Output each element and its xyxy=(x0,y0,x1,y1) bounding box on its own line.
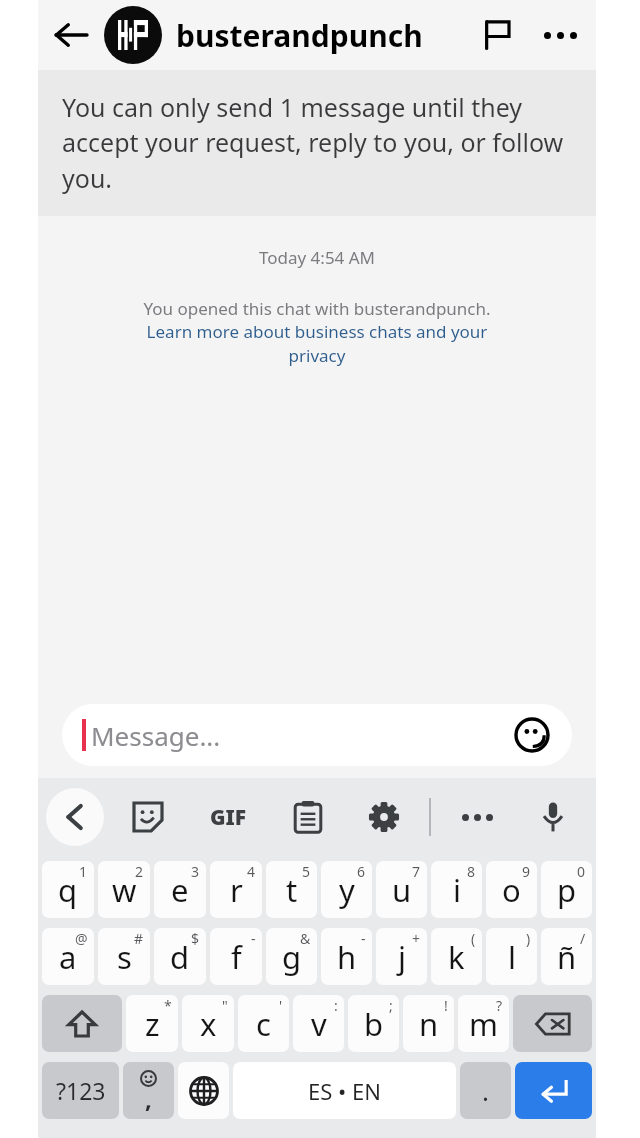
staticText: * xyxy=(164,996,172,1015)
staticText: c xyxy=(256,1003,271,1045)
button[interactable]: ñ xyxy=(541,928,592,985)
staticText: 7 xyxy=(412,862,421,881)
staticText: n xyxy=(419,1003,439,1045)
button[interactable]: o xyxy=(486,861,537,918)
button[interactable]: Message... xyxy=(62,704,572,766)
button[interactable]: Back xyxy=(38,2,104,68)
button[interactable]: n xyxy=(403,995,454,1052)
button[interactable]: Learn more about business chats and your… xyxy=(38,320,596,367)
staticText: ( xyxy=(471,929,476,948)
button[interactable]: p xyxy=(541,861,592,918)
staticText: ñ xyxy=(557,936,577,978)
staticText: 2 xyxy=(135,862,144,881)
button[interactable]: r xyxy=(210,861,262,918)
staticText: e xyxy=(171,869,189,911)
staticText: ?123 xyxy=(56,1075,106,1106)
button[interactable]: Voice input xyxy=(525,789,581,845)
staticText: / xyxy=(580,929,586,948)
staticText: , xyxy=(145,1082,152,1115)
button[interactable]: d xyxy=(154,928,206,985)
staticText: x xyxy=(200,1003,217,1045)
staticText: q xyxy=(58,869,78,911)
button[interactable]: busterandpunch xyxy=(176,15,466,56)
staticText: b xyxy=(364,1003,384,1045)
staticText: i xyxy=(453,869,461,911)
button[interactable]: ES • EN xyxy=(233,1062,456,1119)
staticText: $ xyxy=(191,929,200,948)
button[interactable]: Stickers xyxy=(512,715,552,755)
button[interactable]: m xyxy=(458,995,509,1052)
button[interactable]: w xyxy=(98,861,150,918)
staticText: o xyxy=(502,869,521,911)
button[interactable]: c xyxy=(238,995,289,1052)
button[interactable]: Shift xyxy=(42,995,122,1052)
staticText: 9 xyxy=(522,862,531,881)
button[interactable]: l xyxy=(486,928,537,985)
button[interactable]: t xyxy=(266,861,317,918)
button[interactable]: x xyxy=(182,995,234,1052)
staticText: & xyxy=(300,929,311,948)
button[interactable]: Backspace xyxy=(513,995,592,1052)
staticText: 1 xyxy=(79,862,88,881)
staticText: y xyxy=(339,869,355,911)
button[interactable]: e xyxy=(154,861,206,918)
staticText: ! xyxy=(444,996,448,1015)
staticText: 0 xyxy=(577,862,586,881)
staticText: z xyxy=(145,1003,160,1045)
button[interactable]: z xyxy=(126,995,178,1052)
button[interactable]: g xyxy=(266,928,317,985)
staticText: m xyxy=(469,1003,498,1045)
staticText: - xyxy=(361,929,366,948)
staticText: f xyxy=(231,936,242,978)
staticText: 5 xyxy=(302,862,311,881)
staticText: You can only send 1 message until they a… xyxy=(62,90,572,196)
staticText: - xyxy=(251,929,256,948)
staticText: l xyxy=(508,936,516,978)
button[interactable]: f xyxy=(210,928,262,985)
button[interactable]: More xyxy=(449,789,505,845)
staticText: ; xyxy=(389,996,393,1015)
button[interactable]: Sticker xyxy=(120,789,176,845)
staticText: t xyxy=(286,869,298,911)
button[interactable]: Emoji and comma xyxy=(123,1062,174,1119)
button[interactable]: More options xyxy=(528,3,592,67)
staticText: 4 xyxy=(247,862,256,881)
staticText: d xyxy=(170,936,190,978)
staticText: w xyxy=(112,869,137,911)
button[interactable]: j xyxy=(376,928,427,985)
staticText: Learn more about business chats and your… xyxy=(124,320,510,367)
button[interactable]: Change language xyxy=(178,1062,229,1119)
staticText: ) xyxy=(526,929,531,948)
button[interactable]: ?123 xyxy=(42,1062,119,1119)
staticText: : xyxy=(334,996,338,1015)
button[interactable]: b xyxy=(348,995,399,1052)
button[interactable]: k xyxy=(431,928,482,985)
button[interactable]: Report xyxy=(466,4,528,66)
staticText: p xyxy=(557,869,577,911)
staticText: r xyxy=(230,869,243,911)
staticText: . xyxy=(482,1073,489,1108)
button[interactable]: . xyxy=(460,1062,511,1119)
button[interactable]: a xyxy=(42,928,94,985)
button[interactable]: Enter xyxy=(515,1062,592,1119)
button[interactable]: GIF xyxy=(196,789,260,845)
button[interactable]: y xyxy=(321,861,372,918)
staticText: g xyxy=(282,936,302,978)
button[interactable]: q xyxy=(42,861,94,918)
button[interactable]: s xyxy=(98,928,150,985)
staticText: j xyxy=(398,936,406,978)
staticText: GIF xyxy=(210,803,247,832)
button[interactable]: Back xyxy=(46,788,104,846)
button[interactable]: i xyxy=(431,861,482,918)
staticText: ES • EN xyxy=(308,1076,381,1106)
button[interactable]: v xyxy=(293,995,344,1052)
staticText: # xyxy=(134,929,144,948)
button[interactable]: u xyxy=(376,861,427,918)
staticText: s xyxy=(117,936,132,978)
staticText: k xyxy=(448,936,465,978)
button[interactable]: Settings xyxy=(356,789,412,845)
staticText: 3 xyxy=(191,862,200,881)
button[interactable]: h xyxy=(321,928,372,985)
staticText: h xyxy=(337,936,357,978)
button[interactable]: Clipboard xyxy=(280,789,336,845)
